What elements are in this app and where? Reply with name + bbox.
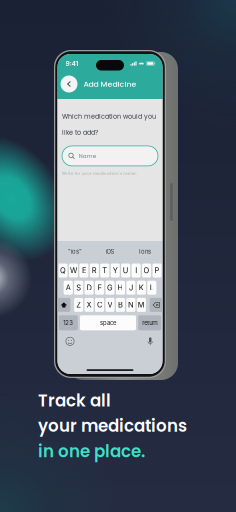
button[interactable]: G	[105, 281, 115, 295]
button[interactable]: N	[126, 298, 135, 312]
button[interactable]: W	[69, 263, 78, 277]
staticText: your medications	[38, 414, 187, 438]
button[interactable]: space	[80, 315, 136, 330]
button[interactable]: C	[95, 298, 104, 312]
staticText: H	[117, 283, 123, 292]
button[interactable]: K	[137, 281, 146, 295]
button[interactable]: M	[137, 298, 146, 312]
button[interactable]: L	[147, 281, 156, 295]
button[interactable]: R	[90, 263, 99, 277]
button[interactable]: V	[105, 298, 114, 312]
button[interactable]: S	[74, 281, 83, 295]
staticText: Z	[76, 300, 81, 309]
button[interactable]: A	[64, 281, 73, 295]
staticText: return	[142, 319, 157, 326]
button[interactable]: H	[116, 281, 125, 295]
staticText: Ions	[139, 248, 151, 255]
button[interactable]: O	[142, 263, 151, 277]
button[interactable]: J	[126, 281, 135, 295]
staticText: U	[123, 266, 129, 275]
button[interactable]: return	[138, 315, 161, 330]
staticText: I	[135, 266, 137, 275]
staticText: T	[102, 266, 107, 275]
staticText: 9:41	[65, 59, 78, 68]
staticText: G	[107, 283, 113, 292]
button[interactable]: E	[79, 263, 88, 277]
staticText: Name	[79, 152, 96, 160]
staticText: R	[92, 266, 97, 275]
button[interactable]: X	[84, 298, 94, 312]
button[interactable]: B	[116, 298, 125, 312]
staticText: E	[82, 266, 86, 275]
button[interactable]: Shift	[57, 298, 70, 312]
staticText: W	[70, 266, 77, 275]
staticText: D	[87, 283, 92, 292]
staticText: Which medication would you	[62, 112, 156, 121]
staticText: iOS	[105, 248, 114, 255]
staticText: F	[97, 283, 101, 292]
staticText: S	[76, 283, 81, 292]
button[interactable]: Z	[74, 298, 83, 312]
button[interactable]: 123	[59, 315, 78, 330]
button[interactable]: Name	[62, 146, 158, 166]
button[interactable]: Back	[60, 75, 77, 92]
staticText: Add Medicine	[83, 79, 136, 89]
staticText: Y	[113, 266, 118, 275]
staticText: like to add?	[62, 128, 98, 137]
staticText: X	[87, 300, 92, 309]
staticText: Write for your medication's name.	[62, 170, 137, 176]
staticText: L	[150, 283, 154, 292]
button[interactable]: Dictation	[147, 337, 153, 346]
staticText: B	[118, 300, 123, 309]
staticText: C	[97, 300, 102, 309]
button[interactable]: I	[132, 263, 141, 277]
staticText: V	[107, 300, 112, 309]
staticText: 123	[63, 319, 73, 326]
button[interactable]: Emoji keyboard	[65, 337, 74, 346]
staticText: J	[129, 283, 133, 292]
button[interactable]: F	[95, 281, 104, 295]
button[interactable]: Delete	[150, 298, 163, 312]
staticText: in one place.	[38, 440, 145, 463]
staticText: M	[138, 300, 145, 309]
staticText: Q	[60, 266, 66, 275]
staticText: "ios"	[68, 248, 82, 255]
staticText: A	[66, 283, 71, 292]
button[interactable]: T	[100, 263, 109, 277]
staticText: space	[100, 319, 116, 326]
staticText: Track all	[38, 389, 111, 412]
staticText: K	[139, 283, 144, 292]
button[interactable]: Y	[111, 263, 120, 277]
button[interactable]: P	[152, 263, 162, 277]
staticText: O	[144, 266, 150, 275]
button[interactable]: Q	[58, 263, 67, 277]
staticText: P	[154, 266, 159, 275]
button[interactable]: U	[121, 263, 130, 277]
button[interactable]: D	[85, 281, 94, 295]
staticText: N	[128, 300, 134, 309]
